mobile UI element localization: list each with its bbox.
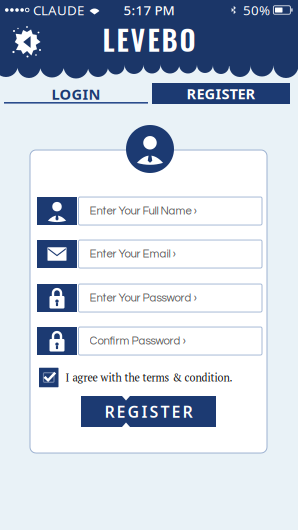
- button[interactable]: LOGIN: [4, 84, 148, 104]
- button[interactable]: Enter Your Email ›: [37, 240, 262, 268]
- staticText: 5:17 PM: [123, 1, 174, 19]
- staticText: L E V E B O: [102, 18, 195, 60]
- staticText: Enter Your Password ›: [89, 292, 196, 304]
- staticText: REGISTER: [186, 84, 255, 103]
- staticText: R E G I S T E R: [104, 401, 192, 422]
- button[interactable]: R E G I S T E R: [81, 396, 216, 427]
- button[interactable]: Back: [11, 26, 43, 58]
- button[interactable]: REGISTER: [152, 83, 290, 104]
- button[interactable]: Enter Your Full Name ›: [37, 197, 262, 225]
- staticText: Confirm Password ›: [89, 335, 185, 347]
- staticText: LOGIN: [51, 84, 100, 104]
- button[interactable]: Agree to terms and conditions: [39, 368, 58, 387]
- button[interactable]: Confirm Password ›: [37, 327, 262, 355]
- staticText: I agree with the terms & condition.: [65, 370, 232, 384]
- button[interactable]: Enter Your Password ›: [37, 284, 262, 312]
- staticText: Enter Your Email ›: [89, 248, 175, 260]
- staticText: CLAUDE: [33, 1, 84, 19]
- staticText: 50%: [243, 1, 270, 19]
- staticText: Enter Your Full Name ›: [89, 205, 196, 217]
